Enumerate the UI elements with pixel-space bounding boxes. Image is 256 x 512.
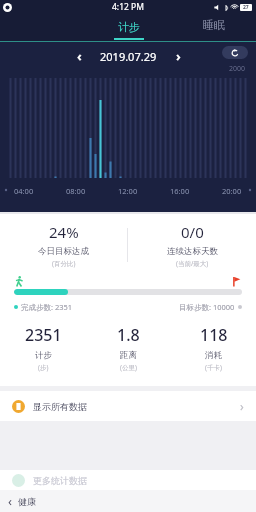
- staticText: 距离: [120, 350, 137, 361]
- staticText: 0/0: [181, 222, 204, 242]
- staticText: 2000: [229, 64, 246, 74]
- staticText: 4:12 PM: [112, 1, 144, 13]
- staticText: ‹: [77, 47, 82, 65]
- staticText: 更多统计数据: [33, 475, 87, 486]
- button[interactable]: 更多统计数据: [0, 470, 256, 490]
- staticText: 今日目标达成: [38, 246, 89, 257]
- staticText: 24%: [49, 222, 79, 242]
- button[interactable]: 计步: [86, 14, 171, 42]
- staticText: 1.8: [117, 324, 140, 346]
- staticText: 2019.07.29: [100, 49, 157, 64]
- staticText: 计步: [35, 350, 52, 361]
- staticText: (百分比): [52, 259, 76, 268]
- staticText: 08:00: [66, 186, 86, 196]
- staticText: 04:00: [14, 186, 34, 196]
- button[interactable]: 睡眠: [171, 14, 256, 42]
- staticText: 计步: [118, 20, 140, 34]
- button[interactable]: [0, 14, 86, 42]
- button[interactable]: 24%: [0, 222, 127, 268]
- staticText: 118: [200, 324, 228, 346]
- staticText: 显示所有数据: [33, 401, 87, 412]
- staticText: ›: [240, 398, 244, 414]
- button[interactable]: Refresh: [222, 46, 248, 59]
- staticText: (公里): [120, 363, 137, 372]
- button[interactable]: Next day: [169, 47, 187, 65]
- button[interactable]: Previous day: [70, 47, 88, 65]
- staticText: 目标步数: 10000: [179, 302, 235, 312]
- staticText: 健康: [18, 496, 36, 507]
- button[interactable]: 1.8: [86, 324, 171, 372]
- button[interactable]: 2351: [0, 324, 86, 372]
- button[interactable]: 显示所有数据: [0, 391, 256, 421]
- staticText: 12:00: [118, 186, 138, 196]
- staticText: (步): [38, 363, 49, 372]
- staticText: 20:00: [222, 186, 242, 196]
- staticText: 消耗: [205, 350, 222, 361]
- staticText: ›: [176, 47, 181, 65]
- staticText: 16:00: [170, 186, 190, 196]
- staticText: 2351: [25, 324, 62, 346]
- staticText: ‹: [8, 492, 13, 510]
- button[interactable]: 0/0: [128, 222, 256, 268]
- button[interactable]: 118: [171, 324, 256, 372]
- staticText: 连续达标天数: [167, 246, 218, 257]
- staticText: 睡眠: [203, 18, 225, 32]
- button[interactable]: ‹: [0, 490, 256, 512]
- staticText: 完成步数: 2351: [21, 302, 73, 312]
- staticText: 27: [243, 4, 249, 11]
- staticText: (当前/最大): [176, 259, 209, 268]
- staticText: (千卡): [205, 363, 222, 372]
